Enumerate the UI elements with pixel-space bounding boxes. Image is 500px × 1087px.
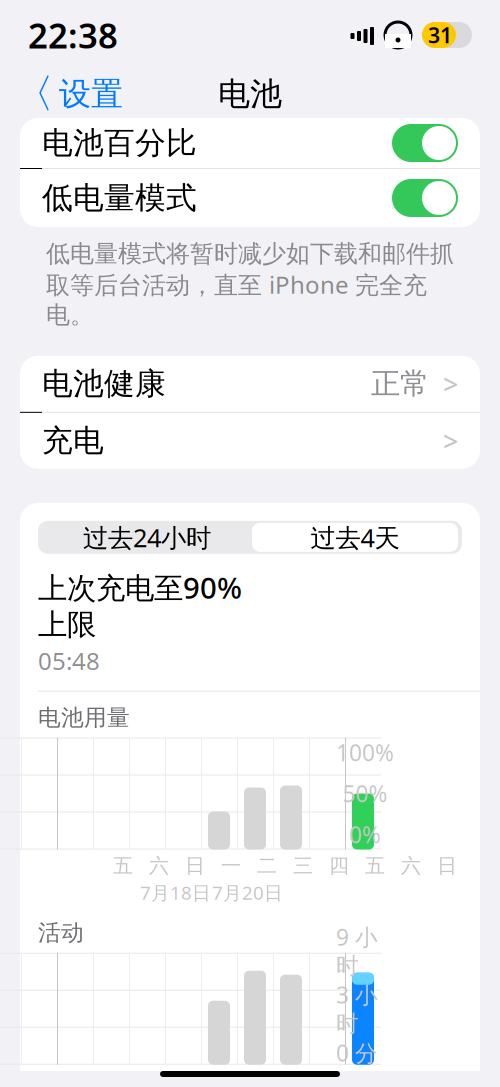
button[interactable]: 充电 <box>20 413 480 469</box>
staticText: 电池健康 <box>42 365 166 403</box>
staticText: 9 小时 <box>336 922 378 980</box>
staticText: 五 <box>365 1069 385 1087</box>
staticText: 二 <box>257 853 277 878</box>
staticText: 日 <box>437 853 457 878</box>
staticText: 低电量模式 <box>42 179 197 217</box>
staticText: 〈 <box>14 69 54 118</box>
staticText: 50% <box>342 778 387 809</box>
staticText: 日 <box>437 1069 457 1087</box>
button[interactable]: 电池百分比 <box>20 118 480 168</box>
staticText: 五 <box>113 853 133 878</box>
button[interactable]: 电池健康 <box>20 356 480 412</box>
staticText: 电池用量 <box>38 704 130 731</box>
staticText: 四 <box>329 1069 349 1087</box>
staticText: 一 <box>221 853 241 878</box>
button[interactable]: 低电量模式 <box>20 169 480 227</box>
staticText: 六 <box>401 1069 421 1087</box>
button[interactable]: 过去24小时 <box>42 521 252 554</box>
staticText: 正常 <box>371 366 429 402</box>
button[interactable]: 过去4天 <box>252 523 458 552</box>
staticText: 五 <box>365 853 385 878</box>
staticText: 设置 <box>59 74 123 114</box>
staticText: 三 <box>293 853 313 878</box>
staticText: 22:38 <box>28 12 118 58</box>
staticText: 六 <box>149 1069 169 1087</box>
staticText: 电池百分比 <box>42 124 197 162</box>
staticText: 日 <box>185 1069 205 1087</box>
staticText: 六 <box>149 853 169 878</box>
staticText: 过去4天 <box>310 520 399 554</box>
staticText: 100% <box>336 737 394 768</box>
staticText: 0% <box>349 819 381 849</box>
staticText: 二 <box>257 1069 277 1087</box>
staticText: 三 <box>293 1069 313 1087</box>
staticText: 上次充电至90%上限 <box>38 568 242 643</box>
staticText: > <box>443 366 458 401</box>
staticText: 3 小时 <box>336 980 378 1038</box>
staticText: 0 分钟 <box>336 1038 378 1087</box>
staticText: 7月20日 <box>212 880 283 905</box>
staticText: 一 <box>221 1069 241 1087</box>
staticText: 7月18日 <box>140 880 211 905</box>
button[interactable]: 〈 <box>0 72 137 116</box>
staticText: 六 <box>401 853 421 878</box>
staticText: 日 <box>185 853 205 878</box>
staticText: 四 <box>329 853 349 878</box>
staticText: > <box>443 423 458 458</box>
staticText: 活动 <box>38 919 84 947</box>
staticText: 充电 <box>42 422 104 460</box>
staticText: 低电量模式将暂时减少如下载和邮件抓取等后台活动，直至 iPhone 完全充电。 <box>46 239 454 330</box>
staticText: 过去24小时 <box>83 520 211 554</box>
staticText: 电池 <box>218 74 282 114</box>
staticText: 05:48 <box>38 645 100 677</box>
staticText: 五 <box>113 1069 133 1087</box>
staticText: 31 <box>428 21 452 49</box>
